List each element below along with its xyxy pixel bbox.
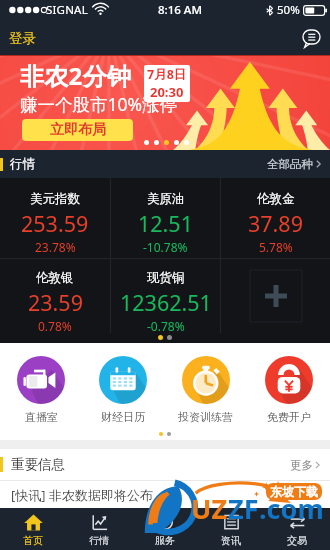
staticText: UZ bbox=[191, 490, 228, 527]
button[interactable]: 美原油 bbox=[111, 178, 220, 258]
staticText: 立即布局 bbox=[50, 121, 106, 139]
button[interactable]: 财经日历 bbox=[82, 343, 164, 424]
staticText: 赚一个股市10%涨停 bbox=[20, 92, 178, 116]
staticText: 伦敦金 bbox=[257, 191, 295, 207]
staticText: 美元指数 bbox=[30, 191, 80, 207]
staticText: 12362.51 bbox=[120, 288, 212, 317]
staticText: 直播室 bbox=[25, 410, 58, 424]
staticText: 重要信息 bbox=[11, 456, 65, 473]
staticText: [快讯] 非农数据即将公布 bbox=[11, 486, 153, 504]
staticText: 23.78% bbox=[35, 239, 76, 255]
button[interactable]: 投资训练营 bbox=[164, 343, 247, 424]
button[interactable]: 立即布局 bbox=[22, 119, 133, 141]
staticText: 首页 bbox=[23, 534, 43, 547]
button[interactable]: 资讯 bbox=[198, 508, 264, 550]
button[interactable]: 伦敦金 bbox=[221, 178, 330, 258]
button[interactable]: 伦敦银 bbox=[0, 259, 110, 333]
button[interactable]: 更多 bbox=[280, 452, 330, 478]
button[interactable]: Messages bbox=[293, 24, 330, 53]
staticText: SIGNAL bbox=[46, 2, 88, 18]
staticText: 更多 bbox=[290, 458, 313, 472]
staticText: 8:16 AM bbox=[158, 2, 202, 18]
staticText: 服务 bbox=[155, 534, 175, 547]
staticText: 20:30 bbox=[150, 83, 184, 101]
staticText: 行情 bbox=[89, 534, 109, 547]
button[interactable]: [快讯] 非农数据即将公布 bbox=[0, 481, 330, 504]
staticText: 交易 bbox=[287, 534, 307, 547]
staticText: -0.78% bbox=[147, 318, 185, 333]
staticText: 免费开户 bbox=[267, 410, 311, 424]
staticText: 投资训练营 bbox=[178, 410, 233, 424]
button[interactable]: 登录 bbox=[0, 23, 45, 54]
button[interactable]: 现货铜 bbox=[111, 259, 220, 333]
staticText: 0.78% bbox=[38, 318, 72, 333]
button[interactable]: 行情 bbox=[66, 508, 132, 550]
staticText: ZF bbox=[228, 490, 259, 527]
staticText: 23.59 bbox=[28, 288, 83, 317]
button[interactable]: 免费开户 bbox=[247, 343, 330, 424]
staticText: 行情 bbox=[10, 156, 35, 172]
staticText: 253.59 bbox=[21, 209, 89, 238]
staticText: 资讯 bbox=[221, 534, 241, 547]
button[interactable]: 非农2分钟 bbox=[0, 56, 330, 150]
staticText: -10.78% bbox=[143, 239, 188, 255]
staticText: 12.51 bbox=[138, 209, 193, 238]
staticText: 50% bbox=[277, 2, 300, 18]
button[interactable]: 直播室 bbox=[0, 343, 82, 424]
button[interactable]: 交易 bbox=[264, 508, 330, 550]
button[interactable]: 美元指数 bbox=[0, 178, 110, 258]
staticText: 现货铜 bbox=[147, 270, 185, 286]
staticText: 登录 bbox=[9, 30, 36, 47]
button[interactable]: 全部品种 bbox=[258, 152, 330, 176]
staticText: .com bbox=[259, 490, 324, 527]
staticText: 7月8日 bbox=[147, 66, 187, 83]
staticText: 财经日历 bbox=[101, 410, 145, 424]
button[interactable]: Add instrument bbox=[250, 270, 302, 322]
button[interactable]: 首页 bbox=[0, 508, 66, 550]
staticText: 美原油 bbox=[147, 191, 185, 207]
staticText: 全部品种 bbox=[267, 157, 313, 171]
button[interactable]: 服务 bbox=[132, 508, 198, 550]
staticText: 东坡下载 bbox=[270, 484, 318, 499]
staticText: 37.89 bbox=[248, 209, 303, 238]
staticText: 伦敦银 bbox=[36, 270, 74, 286]
staticText: 5.78% bbox=[259, 239, 293, 255]
staticText: 非农2分钟 bbox=[20, 59, 132, 92]
